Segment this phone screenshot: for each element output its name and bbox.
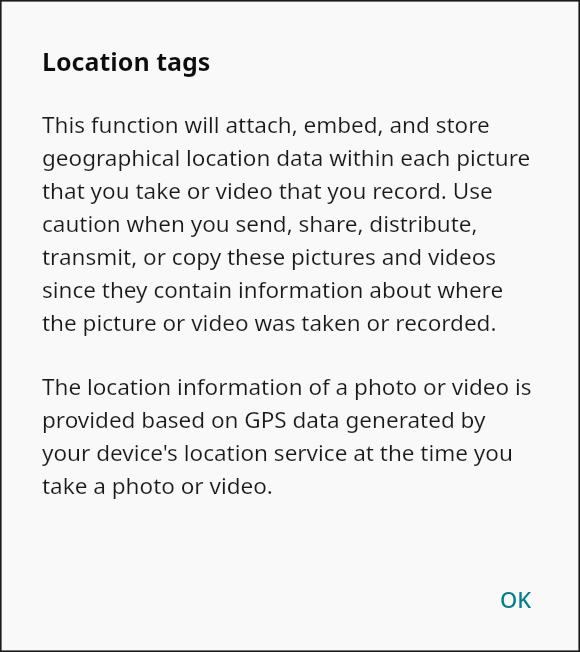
staticText: OK	[500, 584, 532, 614]
button[interactable]: OK	[494, 576, 538, 622]
staticText: Location tags	[42, 44, 211, 78]
staticText: The location information of a photo or v…	[42, 371, 538, 501]
staticText: This function will attach, embed, and st…	[42, 109, 538, 338]
